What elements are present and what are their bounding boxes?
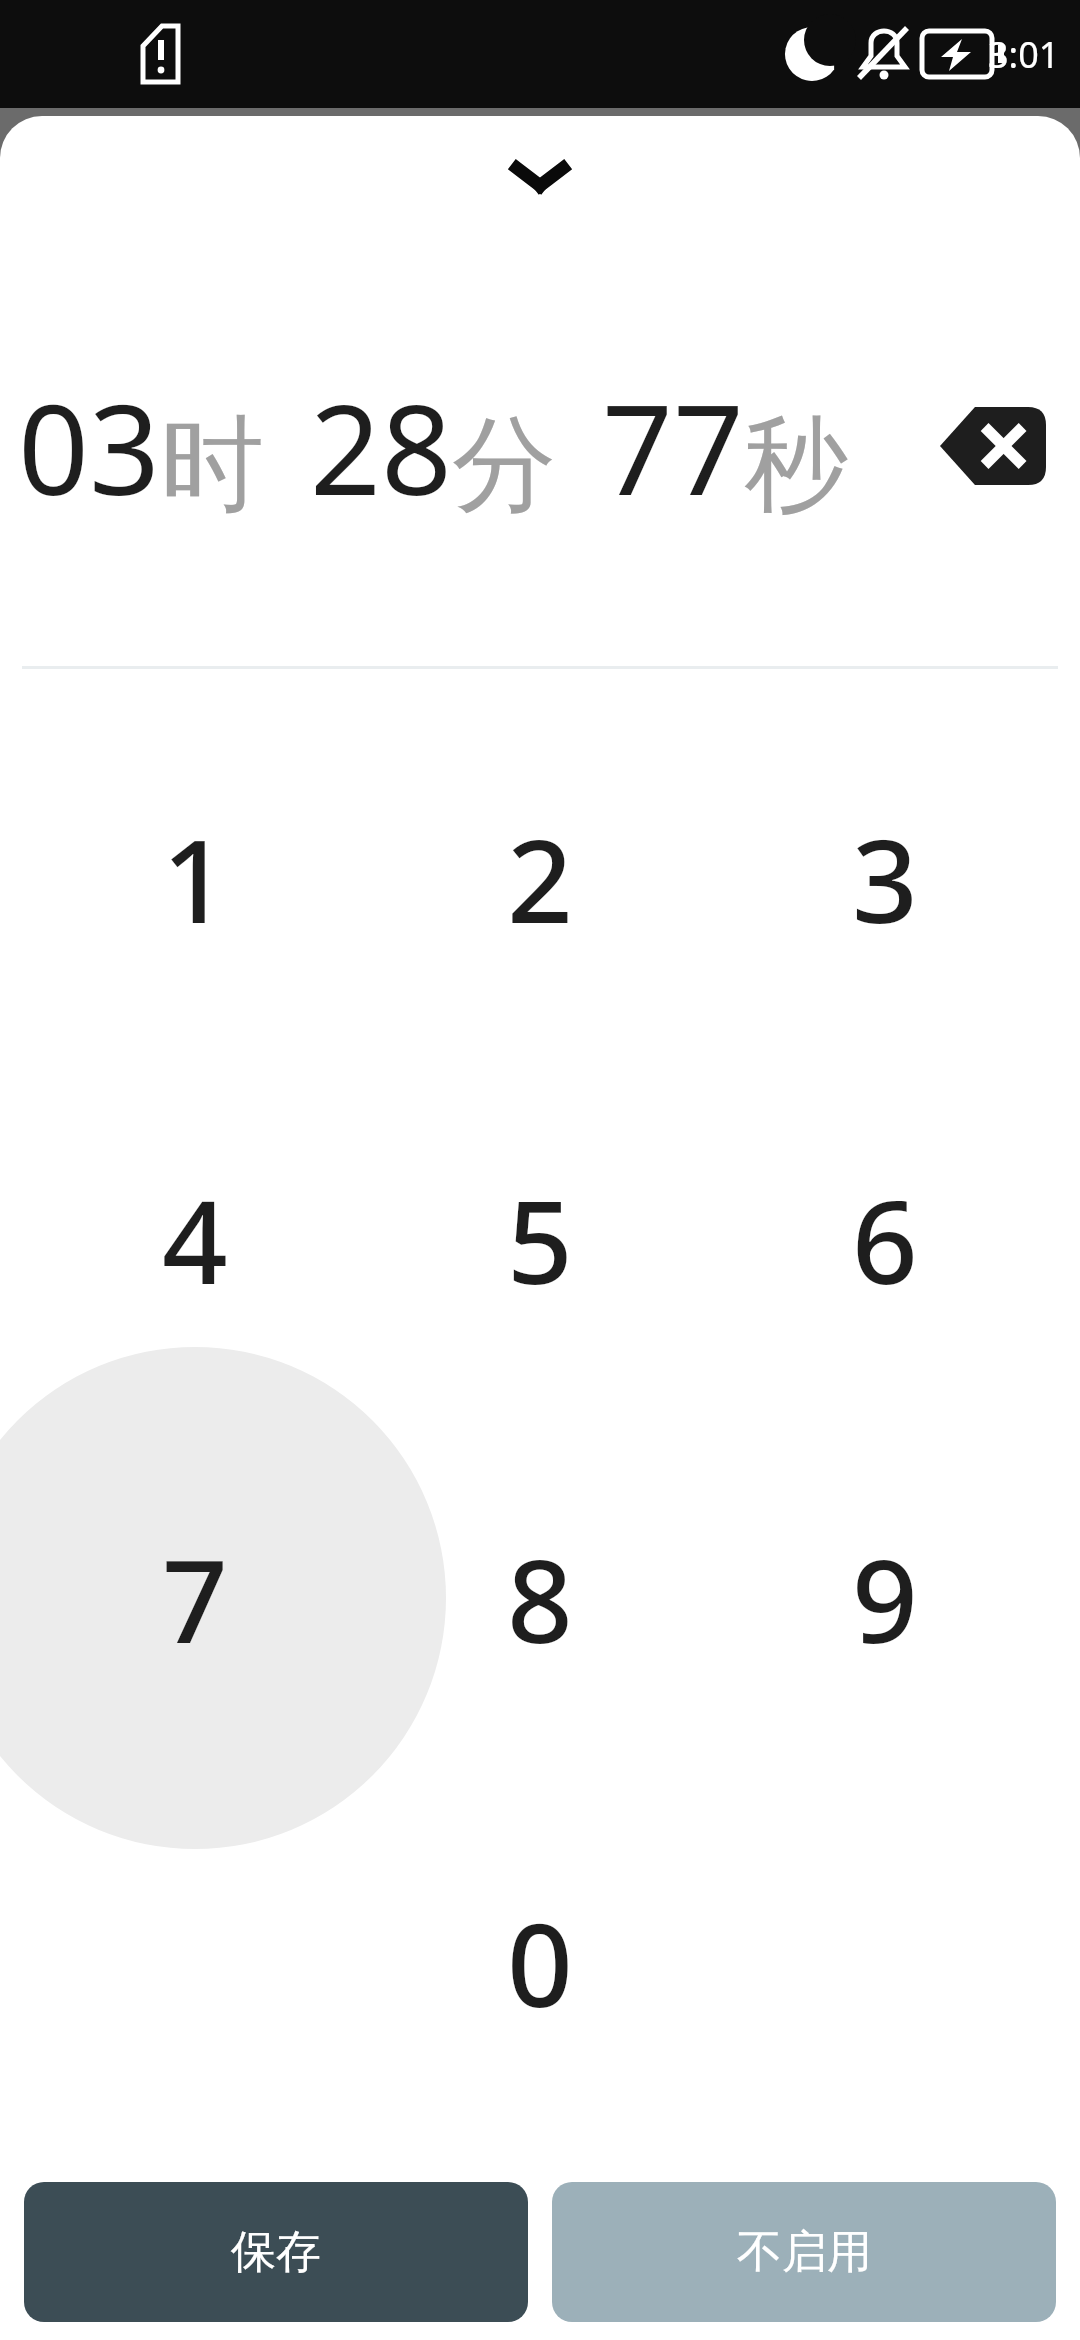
staticText: 分	[452, 400, 556, 531]
button[interactable]: 不启用	[552, 2182, 1056, 2322]
staticText: 时	[160, 400, 264, 531]
staticText: 4	[162, 1161, 228, 1318]
staticText: 3	[852, 800, 918, 957]
button[interactable]: 0	[368, 1790, 712, 2134]
staticText: 0	[507, 1884, 573, 2041]
button[interactable]: Backspace	[928, 386, 1058, 506]
staticText: 7	[162, 1520, 228, 1677]
staticText: 8	[507, 1520, 573, 1677]
button[interactable]: 5	[368, 1067, 712, 1411]
staticText: 6	[852, 1161, 918, 1318]
staticText: 3:01	[988, 30, 1060, 79]
button[interactable]: 4	[23, 1067, 367, 1411]
button[interactable]: 2	[368, 706, 712, 1050]
button[interactable]: 6	[713, 1067, 1057, 1411]
staticText: 秒	[744, 400, 848, 531]
button[interactable]: 保存	[24, 2182, 528, 2322]
button[interactable]: 9	[713, 1426, 1057, 1770]
button[interactable]: 8	[368, 1426, 712, 1770]
staticText: 03	[18, 362, 160, 531]
staticText: 2	[507, 800, 573, 957]
staticText: 1	[162, 800, 228, 957]
staticText: 保存	[231, 2224, 321, 2281]
button[interactable]: 7	[23, 1426, 367, 1770]
staticText: 5	[507, 1161, 573, 1318]
staticText: 28	[310, 362, 452, 531]
button[interactable]: Collapse	[480, 126, 600, 226]
staticText: 不启用	[737, 2224, 872, 2281]
staticText: 77	[602, 362, 744, 531]
staticText: 9	[852, 1520, 918, 1677]
button[interactable]: 3	[713, 706, 1057, 1050]
button[interactable]: 1	[23, 706, 367, 1050]
